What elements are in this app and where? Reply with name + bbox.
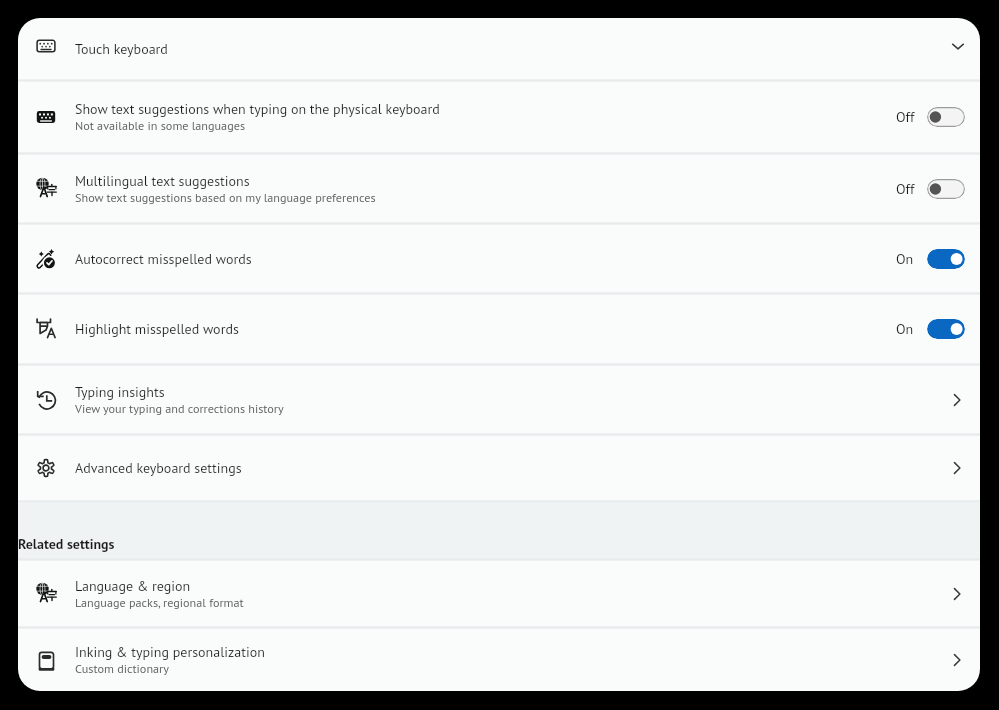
staticText: Touch keyboard [75, 40, 168, 58]
button[interactable]: Open [942, 453, 972, 483]
staticText: Off [896, 180, 915, 198]
button[interactable]: Open [942, 645, 972, 675]
staticText: Custom dictionary [75, 661, 169, 677]
staticText: On [896, 320, 914, 338]
button[interactable]: Switch on [927, 249, 965, 269]
staticText: Show text suggestions when typing on the… [75, 100, 440, 118]
button[interactable]: Switch off [927, 107, 965, 127]
button[interactable]: Switch off [927, 179, 965, 199]
staticText: Not available in some languages [75, 118, 246, 134]
button[interactable]: Language & region [18, 560, 980, 627]
button[interactable]: Expand [943, 31, 973, 61]
staticText: View your typing and corrections history [75, 401, 284, 417]
staticText: On [896, 250, 914, 268]
staticText: Language & region [75, 577, 191, 595]
button[interactable]: Switch on [927, 319, 965, 339]
staticText: Highlight misspelled words [75, 320, 239, 338]
button[interactable]: Multilingual text suggestions [18, 154, 980, 223]
staticText: Off [896, 108, 915, 126]
staticText: Advanced keyboard settings [75, 459, 242, 477]
staticText: Typing insights [75, 383, 165, 401]
button[interactable]: Advanced keyboard settings [18, 435, 980, 501]
button[interactable]: Typing insights [18, 365, 980, 434]
button[interactable]: Show text suggestions when typing on the… [18, 81, 980, 153]
staticText: Inking & typing personalization [75, 643, 265, 661]
button[interactable]: Open [942, 385, 972, 415]
button[interactable]: Highlight misspelled words [18, 294, 980, 364]
button[interactable]: Autocorrect misspelled words [18, 224, 980, 293]
button[interactable]: Open [942, 579, 972, 609]
button[interactable]: Touch keyboard [18, 18, 980, 80]
staticText: Language packs, regional format [75, 595, 244, 611]
button[interactable]: Inking & typing personalization [18, 628, 980, 691]
staticText: Related settings [18, 535, 115, 553]
staticText: Show text suggestions based on my langua… [75, 190, 376, 206]
staticText: Multilingual text suggestions [75, 172, 250, 190]
staticText: Autocorrect misspelled words [75, 250, 252, 268]
